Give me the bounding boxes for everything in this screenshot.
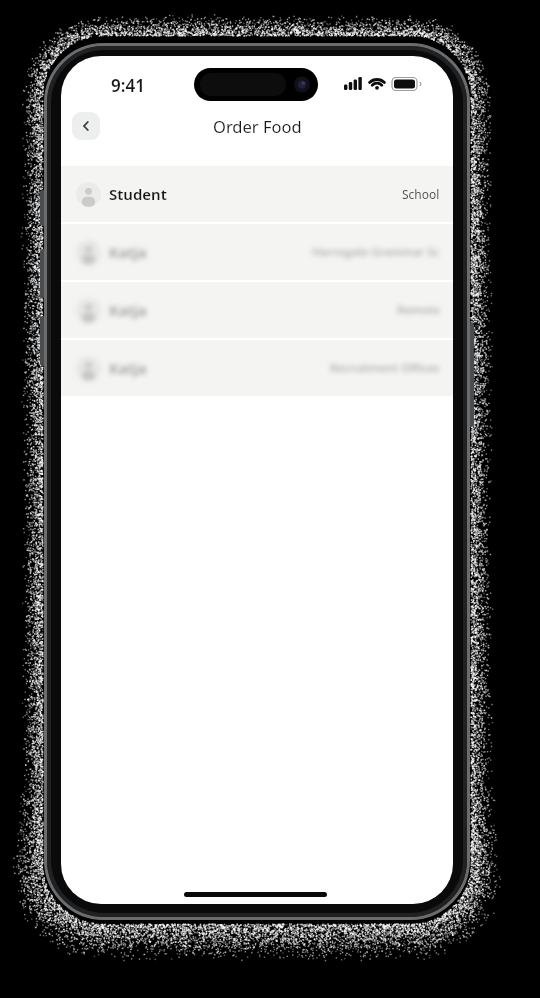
- button[interactable]: Student: [61, 166, 453, 222]
- staticText: Recruitment Offices: [330, 360, 440, 376]
- button[interactable]: [72, 112, 100, 140]
- staticText: School: [402, 186, 440, 202]
- staticText: Order Food: [213, 115, 302, 137]
- staticText: Katja: [109, 242, 147, 262]
- staticText: Student: [109, 184, 167, 204]
- staticText: Harrogate Grammar Sc: [312, 244, 440, 260]
- staticText: Katja: [109, 300, 147, 320]
- staticText: Remote: [397, 302, 440, 318]
- staticText: 9:41: [111, 74, 145, 97]
- button[interactable]: Katja: [61, 224, 453, 280]
- button[interactable]: Katja: [61, 340, 453, 396]
- button[interactable]: Katja: [61, 282, 453, 338]
- staticText: Katja: [109, 358, 147, 378]
